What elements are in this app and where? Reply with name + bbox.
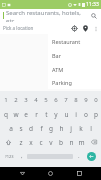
button[interactable]: 4 (31, 93, 41, 107)
button[interactable]: h (56, 121, 66, 135)
staticText: w (13, 110, 19, 119)
button[interactable]: c (36, 135, 46, 149)
staticText: k (79, 124, 83, 133)
button[interactable]: m (76, 135, 86, 149)
button[interactable]: g (46, 121, 56, 135)
button[interactable]: p (91, 107, 101, 121)
button[interactable]: k (76, 121, 86, 135)
button[interactable]: t (41, 107, 51, 121)
staticText: o (84, 110, 88, 119)
staticText: f (40, 124, 43, 133)
button[interactable]: a (6, 121, 16, 135)
staticText: x (29, 138, 33, 147)
button[interactable]: Back (16, 167, 29, 180)
button[interactable]: d (26, 121, 36, 135)
button[interactable]: q (0, 107, 11, 121)
button[interactable]: Drop pin (80, 23, 91, 34)
button[interactable]: Backspace (86, 135, 101, 149)
button[interactable]: l (86, 121, 96, 135)
staticText: Bar (52, 52, 61, 59)
staticText: 6 (54, 96, 58, 104)
staticText: Pick a location (3, 25, 69, 31)
button[interactable]: Enter (83, 149, 100, 163)
button[interactable]: 7 (61, 93, 71, 107)
button[interactable]: . (74, 149, 83, 163)
button[interactable]: u (61, 107, 71, 121)
staticText: d (29, 124, 33, 133)
button[interactable]: 1 (0, 93, 11, 107)
button[interactable]: v (46, 135, 56, 149)
staticText: 5 (44, 96, 48, 104)
staticText: m (78, 138, 85, 147)
staticText: l (90, 124, 92, 133)
button[interactable]: r (31, 107, 41, 121)
button[interactable]: ATM (48, 62, 101, 76)
button[interactable]: Restaurant (48, 34, 101, 48)
button[interactable]: f (36, 121, 46, 135)
button[interactable]: 2 (11, 93, 21, 107)
staticText: 3 (24, 96, 28, 104)
staticText: i (75, 110, 77, 119)
button[interactable]: 6 (51, 93, 61, 107)
button[interactable]: ?123 (1, 149, 17, 163)
staticText: t (45, 110, 48, 119)
staticText: e (24, 110, 28, 119)
staticText: ATM (52, 66, 64, 73)
staticText: q (4, 110, 8, 119)
staticText: 1 (4, 96, 8, 104)
button[interactable]: j (66, 121, 76, 135)
staticText: 0 (94, 96, 98, 104)
staticText: ?123 (5, 154, 14, 159)
staticText: r (35, 110, 38, 119)
staticText: c (39, 138, 43, 147)
staticText: 4 (34, 96, 38, 104)
button[interactable]: n (66, 135, 76, 149)
button[interactable]: Shift (0, 135, 16, 149)
button[interactable]: Recents (73, 167, 86, 180)
staticText: n (69, 138, 74, 147)
staticText: p (94, 110, 98, 119)
staticText: , (21, 152, 23, 160)
button[interactable]: 3 (21, 93, 31, 107)
staticText: 7 (64, 96, 68, 104)
button[interactable]: More options (91, 24, 100, 33)
staticText: 2 (14, 96, 18, 104)
button[interactable]: y (51, 107, 61, 121)
staticText: b (59, 138, 63, 147)
staticText: s (19, 124, 23, 133)
staticText: j (70, 124, 72, 133)
staticText: h (59, 124, 64, 133)
button[interactable]: b (56, 135, 66, 149)
button[interactable]: s (16, 121, 26, 135)
staticText: 8 (74, 96, 78, 104)
staticText: 11:33 (86, 1, 99, 8)
staticText: z (19, 138, 23, 147)
staticText: v (49, 138, 53, 147)
button[interactable]: 0 (91, 93, 101, 107)
button[interactable]: 5 (41, 93, 51, 107)
button[interactable]: Parking (48, 76, 101, 89)
button[interactable]: e (21, 107, 31, 121)
staticText: u (64, 110, 69, 119)
button[interactable]: i (71, 107, 81, 121)
button[interactable]: 8 (71, 93, 81, 107)
staticText: Search restaurants, hotels, etc (6, 9, 89, 22)
button[interactable]: o (81, 107, 91, 121)
button[interactable]: My location (69, 23, 80, 34)
button[interactable]: Search restaurants, hotels, etc (0, 9, 101, 22)
button[interactable]: 9 (81, 93, 91, 107)
staticText: Restaurant (52, 38, 81, 45)
button[interactable]: w (11, 107, 21, 121)
staticText: Parking (52, 79, 72, 86)
button[interactable]: Bar (48, 48, 101, 62)
staticText: . (78, 152, 80, 160)
button[interactable]: x (26, 135, 36, 149)
button[interactable]: Search (89, 11, 98, 20)
button[interactable]: Home (44, 167, 57, 180)
staticText: a (9, 124, 13, 133)
staticText: g (49, 124, 53, 133)
staticText: 9 (84, 96, 88, 104)
button[interactable]: , (17, 149, 26, 163)
button[interactable]: z (16, 135, 26, 149)
